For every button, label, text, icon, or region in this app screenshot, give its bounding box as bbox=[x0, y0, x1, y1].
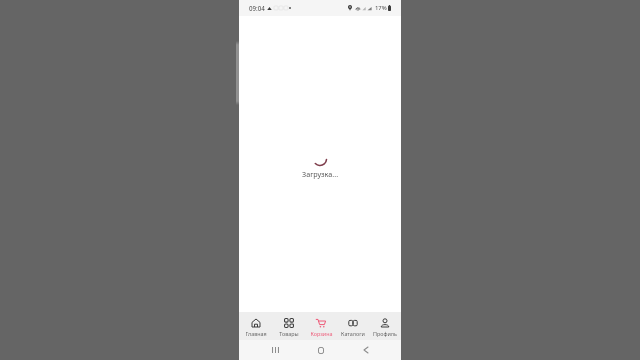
staticText: Профиль bbox=[373, 330, 397, 337]
button[interactable]: Home bbox=[309, 340, 332, 360]
staticText: Главная bbox=[245, 330, 267, 337]
staticText: Каталоги bbox=[341, 330, 365, 337]
button[interactable]: Каталоги bbox=[337, 312, 369, 340]
staticText: 09:04 bbox=[249, 4, 265, 12]
button[interactable]: Back bbox=[354, 340, 377, 360]
button[interactable]: Recent apps bbox=[264, 340, 287, 360]
button[interactable]: Товары bbox=[272, 312, 305, 340]
button[interactable]: Корзина bbox=[305, 312, 337, 340]
staticText: 17% bbox=[375, 4, 387, 12]
staticText: Товары bbox=[279, 330, 299, 337]
button[interactable]: Профиль bbox=[369, 312, 401, 340]
button[interactable]: Главная bbox=[239, 312, 272, 340]
staticText: Загрузка... bbox=[302, 169, 339, 179]
staticText: Корзина bbox=[310, 330, 333, 337]
